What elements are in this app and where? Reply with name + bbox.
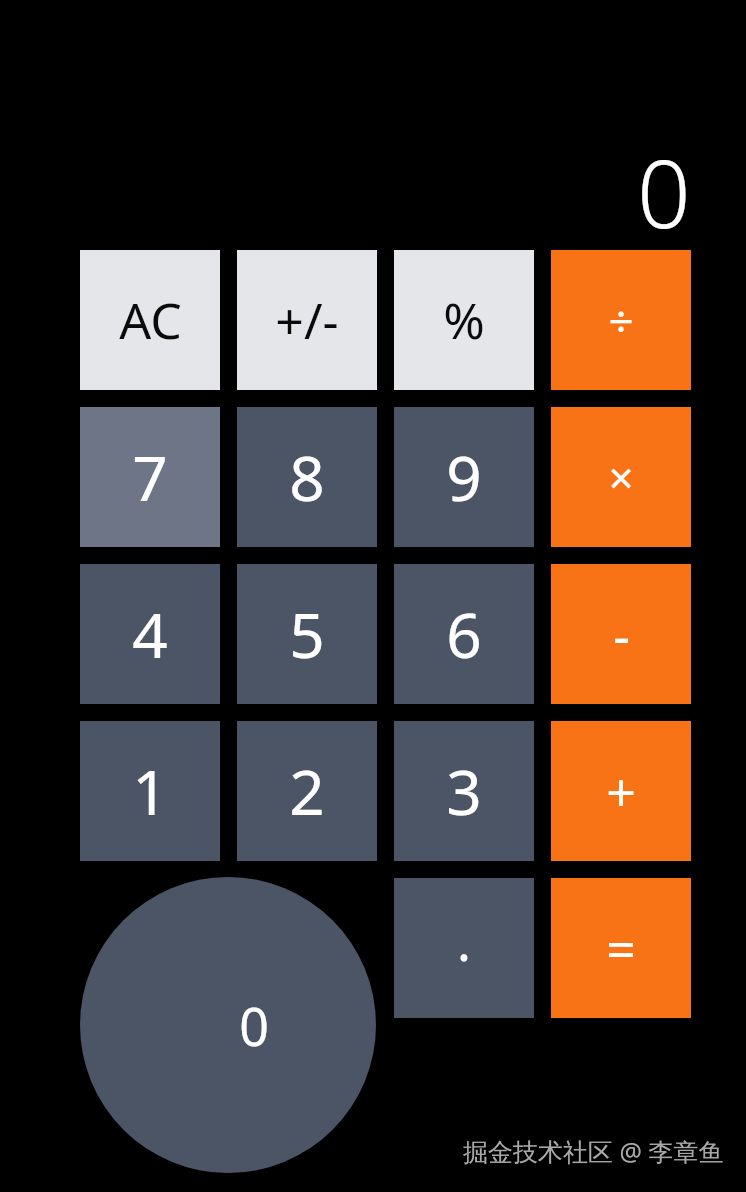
staticText: AC (119, 286, 182, 354)
staticText: 7 (132, 435, 168, 519)
button[interactable]: 8 (237, 407, 377, 547)
staticText: 8 (289, 435, 325, 519)
button[interactable]: 0 (80, 877, 376, 1173)
button[interactable]: 1 (80, 721, 220, 861)
button[interactable]: 2 (237, 721, 377, 861)
button[interactable]: Equals (551, 878, 691, 1018)
staticText: +/- (275, 286, 339, 354)
button[interactable]: Subtract (551, 564, 691, 704)
staticText: × (608, 447, 634, 507)
button[interactable]: 9 (394, 407, 534, 547)
staticText: = (606, 913, 636, 984)
button[interactable]: 7 (80, 407, 220, 547)
staticText: ÷ (608, 290, 634, 350)
button[interactable]: 3 (394, 721, 534, 861)
staticText: . (457, 905, 471, 976)
staticText: 3 (446, 749, 482, 833)
staticText: 4 (132, 592, 168, 676)
staticText: 9 (446, 435, 482, 519)
button[interactable]: Multiply (551, 407, 691, 547)
staticText: 0 (239, 990, 269, 1061)
staticText: % (443, 286, 485, 354)
staticText: 1 (132, 749, 168, 833)
button[interactable]: 4 (80, 564, 220, 704)
staticText: 5 (289, 592, 325, 676)
button[interactable]: 6 (394, 564, 534, 704)
staticText: - (613, 599, 630, 670)
button[interactable]: 5 (237, 564, 377, 704)
button[interactable]: Add (551, 721, 691, 861)
button[interactable]: % (394, 250, 534, 390)
staticText: 0 (637, 128, 691, 240)
staticText: 6 (446, 592, 482, 676)
button[interactable]: +/- (237, 250, 377, 390)
staticText: + (606, 756, 636, 827)
button[interactable]: Divide (551, 250, 691, 390)
staticText: 掘金技术社区 @ 李章鱼 (463, 1134, 724, 1168)
button[interactable]: . (394, 878, 534, 1018)
staticText: 2 (289, 749, 325, 833)
button[interactable]: AC (80, 250, 220, 390)
